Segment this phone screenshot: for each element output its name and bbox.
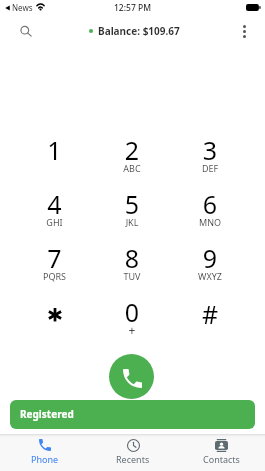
- button[interactable]: #: [171, 295, 249, 349]
- button[interactable]: 7: [16, 241, 93, 295]
- button[interactable]: 8: [93, 241, 171, 295]
- staticText: Balance: $109.67: [98, 24, 180, 38]
- button[interactable]: 4: [16, 187, 93, 241]
- button[interactable]: Search: [12, 17, 40, 45]
- staticText: MNO: [171, 216, 249, 228]
- staticText: 12:57 PM: [114, 2, 151, 14]
- staticText: TUV: [93, 270, 171, 282]
- staticText: WXYZ: [171, 270, 249, 282]
- staticText: PQRS: [16, 270, 93, 282]
- staticText: 7: [16, 241, 93, 275]
- staticText: ABC: [93, 162, 171, 174]
- button[interactable]: Recents: [89, 434, 177, 465]
- staticText: Registered: [20, 407, 74, 421]
- staticText: JKL: [93, 216, 171, 228]
- staticText: Recents: [116, 453, 150, 465]
- button[interactable]: 6: [171, 187, 249, 241]
- staticText: 3: [171, 133, 249, 167]
- staticText: 4: [16, 187, 93, 221]
- staticText: Phone: [31, 453, 59, 465]
- button[interactable]: 2: [93, 133, 171, 187]
- staticText: 8: [93, 241, 171, 275]
- staticText: +: [93, 322, 171, 338]
- staticText: 1: [16, 133, 93, 167]
- staticText: #: [171, 297, 249, 331]
- button[interactable]: 5: [93, 187, 171, 241]
- staticText: 0: [93, 295, 171, 329]
- staticText: Contacts: [203, 453, 240, 465]
- button[interactable]: 3: [171, 133, 249, 187]
- button[interactable]: 0: [93, 295, 171, 349]
- staticText: 2: [93, 133, 171, 167]
- button[interactable]: Phone: [0, 434, 89, 465]
- button[interactable]: 1: [16, 133, 93, 187]
- staticText: 9: [171, 241, 249, 275]
- staticText: 5: [93, 187, 171, 221]
- button[interactable]: [16, 295, 93, 349]
- button[interactable]: 9: [171, 241, 249, 295]
- button[interactable]: Contacts: [177, 434, 265, 465]
- button[interactable]: Registered: [10, 400, 255, 429]
- button[interactable]: Call: [109, 354, 154, 399]
- staticText: News: [12, 2, 33, 13]
- staticText: GHI: [16, 216, 93, 228]
- staticText: DEF: [171, 162, 249, 174]
- button[interactable]: More options: [231, 18, 257, 44]
- staticText: 6: [171, 187, 249, 221]
